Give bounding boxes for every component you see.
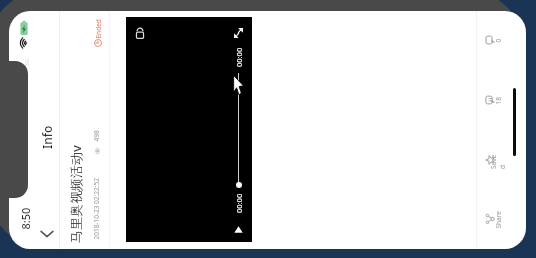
staticText: 00:00 bbox=[234, 193, 244, 213]
staticText: 马里奥视频活动v bbox=[67, 145, 85, 243]
staticText: 0 bbox=[493, 38, 502, 42]
staticText: Saved bbox=[489, 151, 507, 169]
button[interactable]: Play bbox=[231, 222, 246, 237]
staticText: 498 bbox=[91, 129, 100, 141]
button[interactable]: Saved bbox=[481, 135, 513, 185]
staticText: Ended bbox=[93, 18, 102, 38]
button[interactable]: Lock screen bbox=[132, 23, 148, 41]
staticText: 00:00 bbox=[234, 47, 244, 67]
staticText: 5G bbox=[22, 58, 29, 66]
button[interactable]: Back bbox=[38, 226, 56, 242]
button[interactable]: Share bbox=[481, 194, 513, 244]
staticText: Share bbox=[493, 210, 502, 228]
staticText: 2018-10-23 02:22:52 bbox=[91, 177, 100, 239]
button[interactable]: Likes bbox=[481, 75, 513, 125]
staticText: Info bbox=[39, 125, 55, 149]
button[interactable]: Fullscreen bbox=[230, 23, 248, 41]
staticText: 18 bbox=[493, 96, 502, 104]
staticText: 8:50 bbox=[17, 207, 32, 229]
button[interactable]: Comments bbox=[481, 15, 513, 65]
